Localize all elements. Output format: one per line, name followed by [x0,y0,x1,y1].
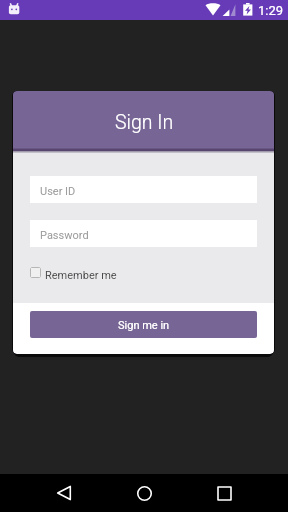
button[interactable]: User ID [30,176,257,203]
button[interactable]: Recent apps [200,474,248,512]
button[interactable]: Remember me [30,267,117,278]
staticText: Sign In [115,111,174,134]
staticText: 1:29 [258,3,284,18]
button[interactable]: Sign me in [30,311,257,338]
button[interactable]: Back [40,474,88,512]
staticText: Sign me in [118,319,170,332]
staticText: Password [40,229,89,242]
button[interactable]: Password [30,220,257,247]
button[interactable]: Home [120,474,168,512]
staticText: Remember me [45,269,117,280]
staticText: User ID [40,185,76,198]
